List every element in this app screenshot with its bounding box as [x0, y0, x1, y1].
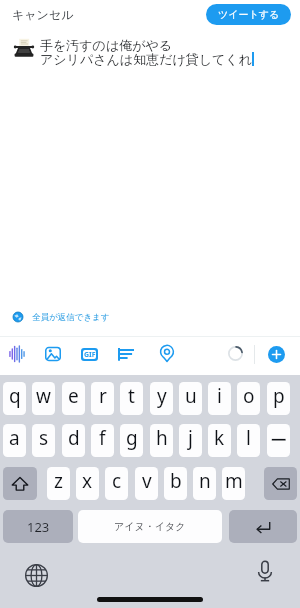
button[interactable]: Backspace	[264, 467, 297, 500]
button[interactable]: i	[208, 382, 231, 415]
staticText: c	[112, 468, 122, 494]
button[interactable]: キャンセル	[6, 3, 80, 26]
button[interactable]: Dictation	[254, 560, 276, 582]
button[interactable]: s	[32, 424, 55, 457]
staticText: アイヌ・イタク	[114, 520, 186, 533]
button[interactable]: Character count	[228, 346, 243, 361]
staticText: o	[243, 383, 255, 409]
staticText: g	[126, 425, 138, 451]
button[interactable]: o	[237, 382, 260, 415]
button[interactable]: n	[193, 467, 216, 500]
staticText: p	[273, 383, 285, 409]
staticText: d	[68, 425, 80, 451]
button[interactable]: e	[62, 382, 85, 415]
staticText: キャンセル	[12, 7, 74, 22]
button[interactable]: y	[150, 382, 173, 415]
staticText: j	[188, 425, 193, 451]
button[interactable]: c	[105, 467, 128, 500]
button[interactable]: v	[135, 467, 158, 500]
staticText: i	[217, 383, 222, 409]
staticText: f	[99, 425, 106, 451]
button[interactable]: 123	[3, 510, 73, 543]
button[interactable]: 全員が返信できます	[0, 305, 118, 329]
button[interactable]: ツイートする	[206, 4, 291, 25]
staticText: w	[36, 383, 51, 409]
button[interactable]: m	[222, 467, 245, 500]
button[interactable]: Poll	[115, 343, 137, 365]
staticText: 123	[27, 518, 50, 536]
staticText: k	[214, 425, 225, 451]
staticText: v	[142, 468, 152, 494]
staticText: ー	[270, 430, 287, 451]
staticText: t	[128, 383, 135, 409]
button[interactable]: u	[179, 382, 202, 415]
staticText: z	[54, 468, 63, 494]
button[interactable]: Add another tweet	[268, 346, 285, 363]
staticText: q	[9, 383, 21, 409]
button[interactable]: j	[179, 424, 202, 457]
button[interactable]: b	[164, 467, 187, 500]
button[interactable]: f	[91, 424, 114, 457]
staticText: 全員が返信できます	[32, 312, 110, 323]
staticText: 手を汚すのは俺がやる	[40, 37, 173, 53]
button[interactable]: p	[267, 382, 290, 415]
button[interactable]: Photo	[42, 343, 64, 365]
button[interactable]: t	[120, 382, 143, 415]
button[interactable]: x	[76, 467, 99, 500]
staticText: アシリパさんは知恵だけ貸してくれ	[40, 51, 252, 67]
staticText: s	[39, 425, 49, 451]
button[interactable]: a	[3, 424, 26, 457]
staticText: y	[157, 383, 167, 409]
button[interactable]: h	[150, 424, 173, 457]
button[interactable]: Shift	[3, 467, 37, 500]
staticText: ツイートする	[218, 8, 280, 21]
button[interactable]: Audio	[6, 343, 28, 365]
staticText: n	[199, 468, 211, 494]
button[interactable]: k	[208, 424, 231, 457]
staticText: u	[185, 383, 197, 409]
button[interactable]: q	[3, 382, 26, 415]
staticText: r	[99, 383, 107, 409]
staticText: GIF	[84, 350, 96, 359]
staticText: x	[82, 468, 93, 494]
button[interactable]: GIF	[78, 343, 100, 365]
button[interactable]: l	[237, 424, 260, 457]
staticText: a	[9, 425, 20, 451]
button[interactable]: アイヌ・イタク	[78, 510, 222, 543]
staticText: b	[170, 468, 182, 494]
button[interactable]: ー	[267, 424, 290, 457]
button[interactable]: w	[32, 382, 55, 415]
button[interactable]: g	[120, 424, 143, 457]
button[interactable]: Return	[229, 510, 297, 543]
button[interactable]: Location	[156, 343, 178, 365]
button[interactable]: d	[62, 424, 85, 457]
staticText: l	[246, 425, 251, 451]
button[interactable]: z	[47, 467, 70, 500]
button[interactable]: Change keyboard	[25, 564, 48, 587]
staticText: m	[225, 468, 243, 494]
staticText: h	[156, 425, 168, 451]
button[interactable]: r	[91, 382, 114, 415]
staticText: e	[68, 383, 79, 409]
